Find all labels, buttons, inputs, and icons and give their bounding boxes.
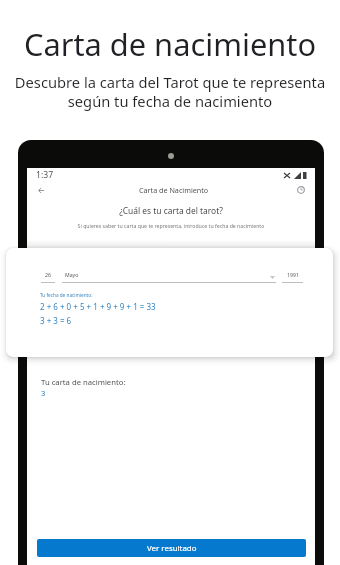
button[interactable]: 1991	[282, 266, 303, 283]
staticText: 26	[45, 271, 51, 278]
staticText: Tu carta de nacimiento:	[41, 377, 126, 387]
button[interactable]: Mayo	[62, 266, 276, 283]
staticText: Descubre la carta del Tarot que te repre…	[0, 72, 340, 111]
staticText: 1991	[287, 271, 299, 278]
staticText: 2 + 6 + 0 + 5 + 1 + 9 + 9 + 1 = 33	[40, 301, 156, 312]
button[interactable]: Back	[35, 184, 47, 196]
staticText: Tu fecha de nacimiento:	[40, 292, 93, 298]
staticText: Mayo	[65, 271, 79, 278]
button[interactable]: Historial	[295, 184, 307, 196]
staticText: ¿Cuál es tu carta del tarot?	[27, 205, 315, 216]
staticText: 3	[41, 388, 46, 398]
staticText: 1:37	[36, 169, 54, 181]
button[interactable]: 26	[41, 266, 55, 283]
staticText: Ver resultado	[147, 543, 197, 554]
staticText: 3 + 3 = 6	[40, 315, 72, 326]
staticText: Carta de nacimiento	[0, 23, 340, 65]
staticText: Si quieres saber tu carta que te represe…	[27, 222, 315, 229]
button[interactable]: Ver resultado	[37, 539, 306, 557]
staticText: Carta de Nacimiento	[139, 185, 209, 195]
